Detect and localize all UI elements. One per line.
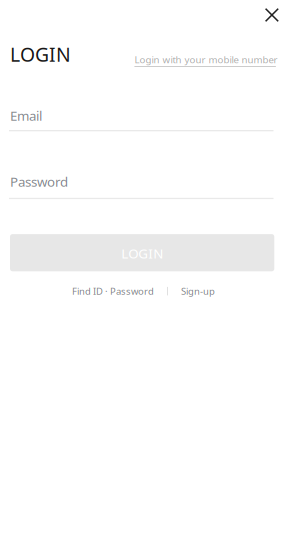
staticText: Sign-up bbox=[181, 285, 215, 298]
staticText: LOGIN bbox=[121, 244, 163, 262]
staticText: Find ID · Password bbox=[72, 285, 154, 298]
staticText: Login with your mobile number bbox=[134, 53, 277, 66]
button[interactable]: Find ID · Password bbox=[72, 285, 154, 298]
button[interactable]: Close bbox=[259, 2, 285, 28]
button[interactable]: Login with your mobile number bbox=[134, 53, 277, 67]
staticText: Password bbox=[10, 173, 68, 191]
staticText: Email bbox=[10, 107, 42, 125]
button[interactable]: Sign-up bbox=[181, 285, 215, 298]
staticText: LOGIN bbox=[10, 41, 71, 67]
